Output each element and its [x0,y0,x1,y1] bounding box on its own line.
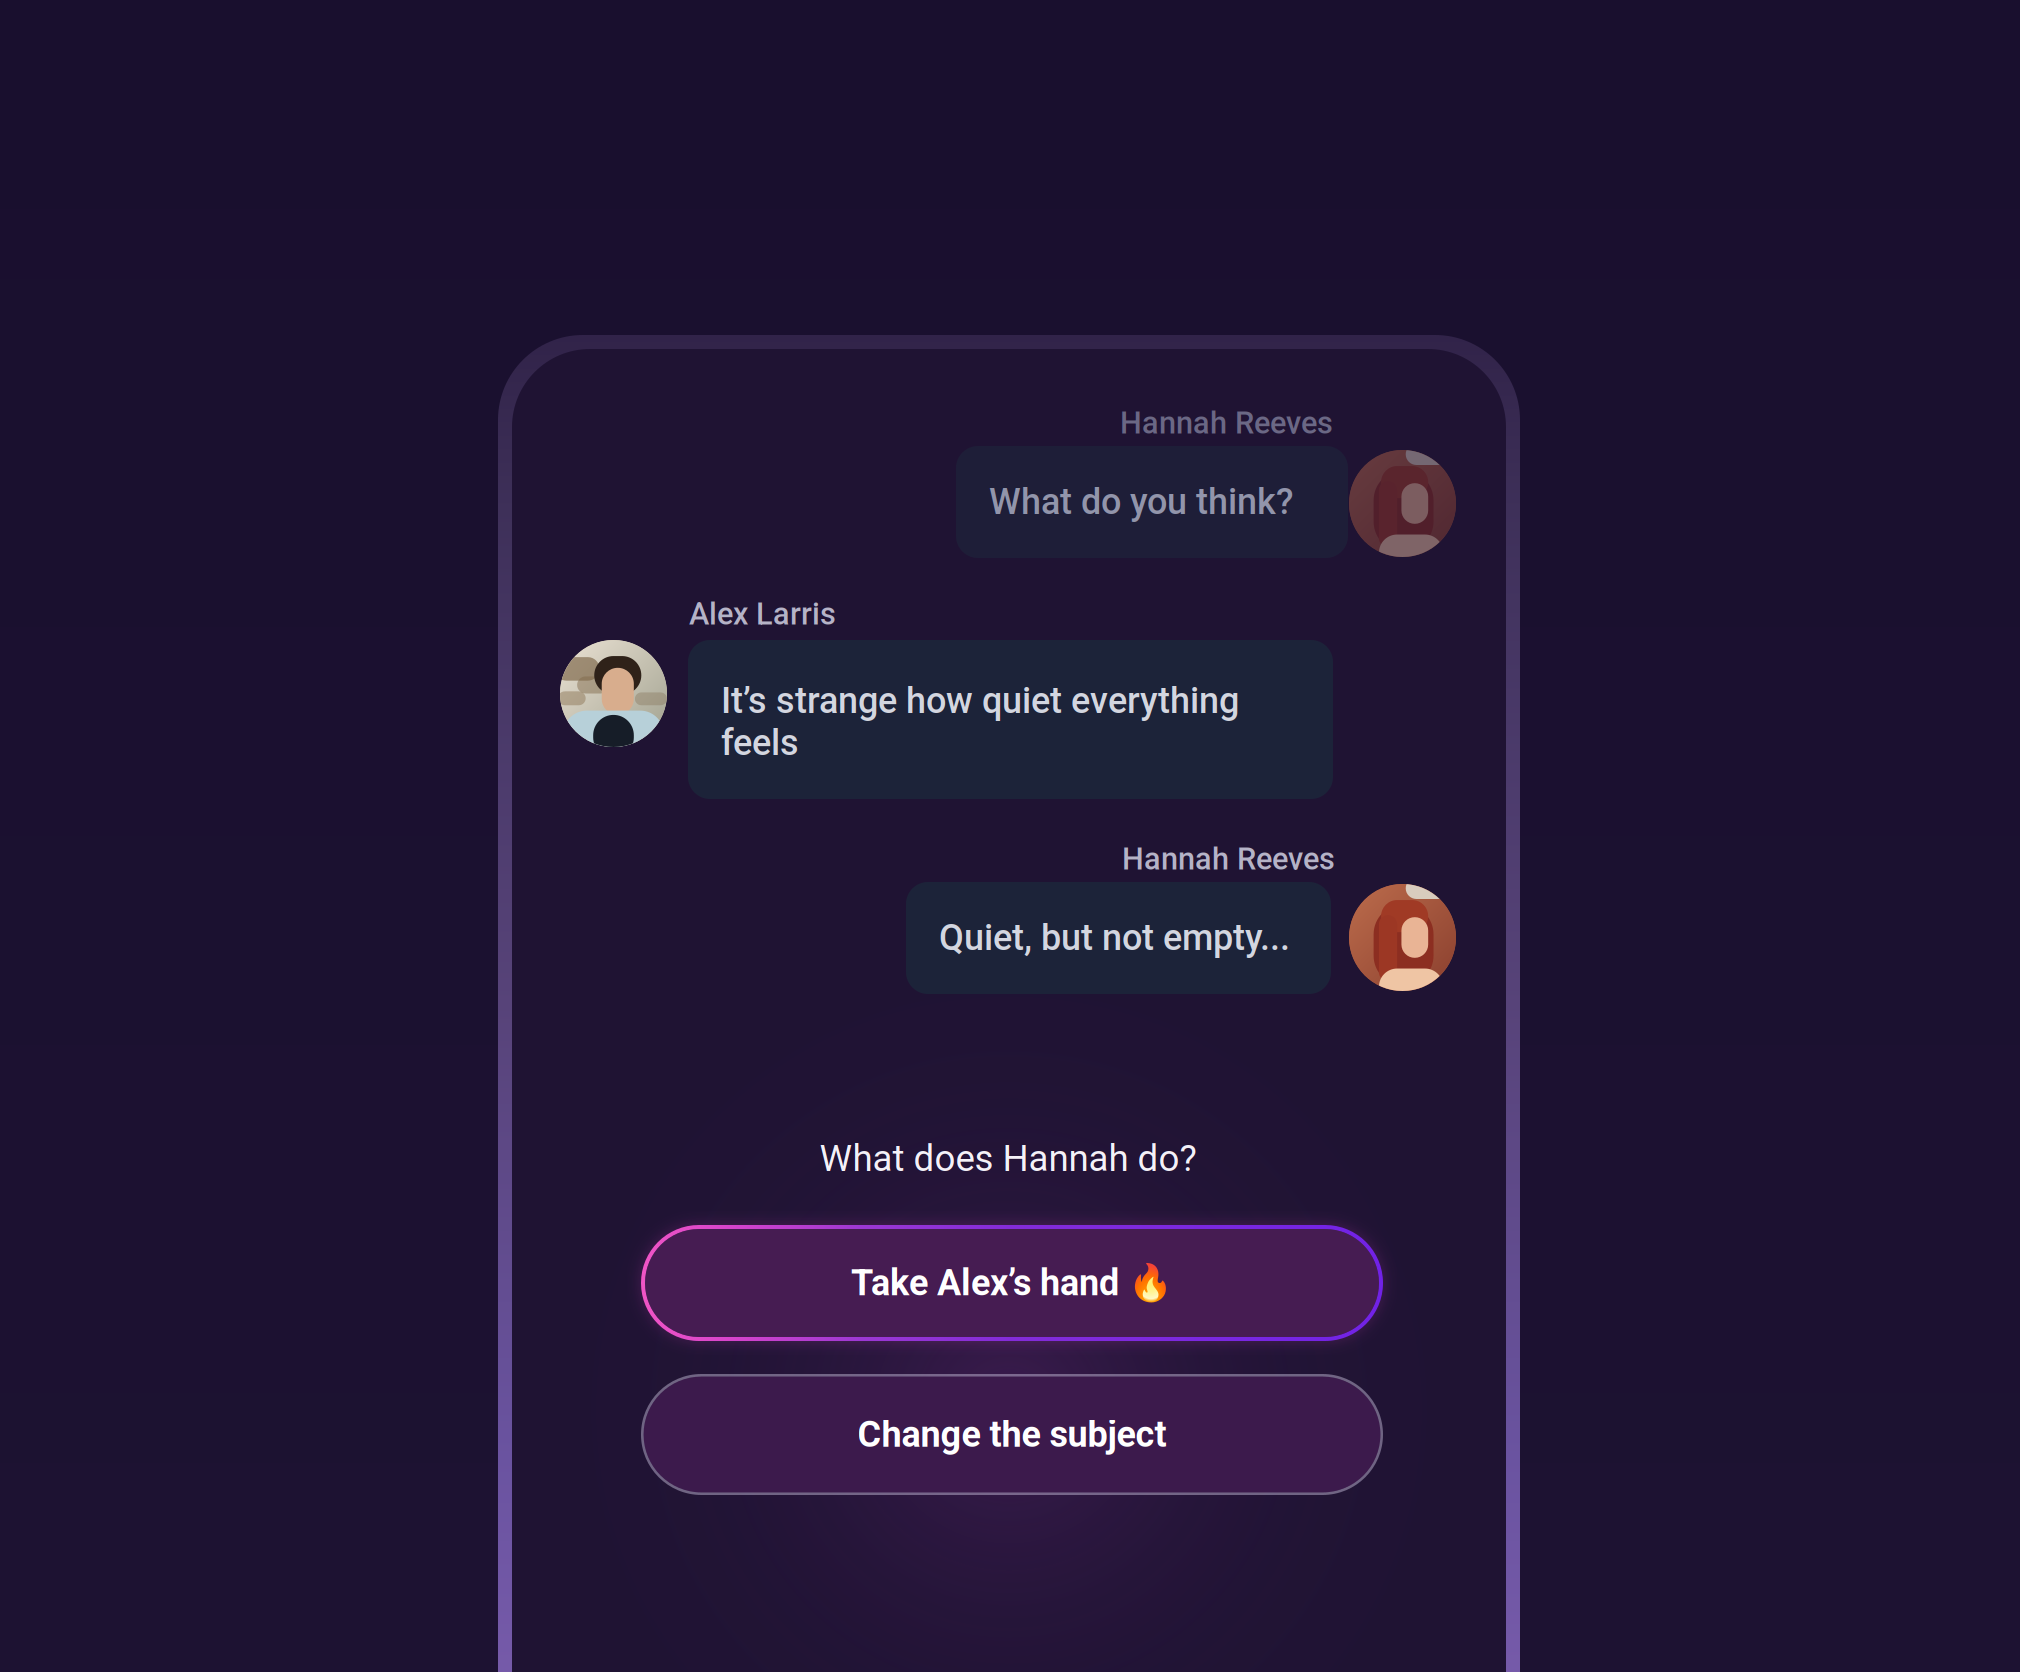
staticText: Alex Larris [689,596,836,632]
staticText: Take Alex’s hand 🔥 [851,1262,1173,1304]
staticText: What do you think? [989,480,1294,523]
staticText: Hannah Reeves [1122,841,1335,877]
staticText: It’s strange how quiet everything feels [721,679,1239,764]
staticText: What does Hannah do? [819,1137,1196,1180]
staticText: Hannah Reeves [1120,405,1333,441]
button[interactable]: Take Alex’s hand 🔥 [641,1225,1383,1341]
button[interactable]: Change the subject [641,1374,1383,1495]
staticText: Change the subject [857,1413,1166,1456]
staticText: Quiet, but not empty... [939,916,1290,959]
